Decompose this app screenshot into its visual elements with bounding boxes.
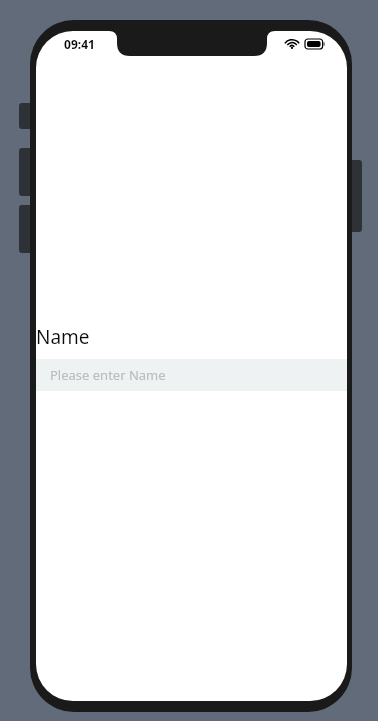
- button[interactable]: Please enter Name: [36, 359, 347, 391]
- staticText: Name: [36, 324, 90, 350]
- staticText: Please enter Name: [50, 366, 166, 384]
- staticText: 09:41: [64, 36, 95, 52]
